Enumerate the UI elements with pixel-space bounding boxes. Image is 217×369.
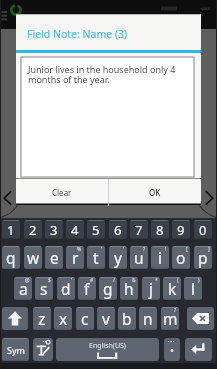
staticText: e [50,247,59,268]
button[interactable]: 5 [87,220,105,239]
staticText: 7 [135,221,143,239]
staticText: Sym [7,344,25,356]
staticText: 1 [7,221,15,239]
button[interactable]: w [24,246,42,269]
button[interactable]: Backspace [187,307,214,330]
button[interactable]: o [172,246,190,269]
staticText: b [122,308,132,329]
button[interactable]: t [87,246,105,269]
button[interactable]: 8 [151,220,169,239]
staticText: 0 [199,221,207,239]
staticText: English(US) [89,341,126,351]
staticText: [ [186,246,188,253]
button[interactable]: Period [164,338,180,361]
staticText: OK [149,187,161,198]
button[interactable]: c [76,307,94,330]
button[interactable]: d [57,277,75,300]
staticText: % [77,246,82,253]
button[interactable]: z [33,307,51,330]
staticText: t [93,247,99,268]
staticText: i [158,247,162,268]
staticText: 6 [114,221,122,239]
button[interactable]: l [184,277,202,300]
button[interactable]: g [99,277,117,300]
button[interactable]: Input settings [33,338,53,361]
staticText: l [191,278,195,299]
staticText: v [102,308,110,329]
button[interactable]: 9 [172,220,190,239]
button[interactable]: h [120,277,138,300]
staticText: m [163,308,178,329]
button[interactable]: p [194,246,212,269]
staticText: 3 [50,221,58,239]
staticText: Junior lives in the household only 4 mon… [28,63,180,86]
staticText: c [81,308,89,329]
button[interactable]: Shift [2,307,28,330]
staticText: s [40,278,48,299]
staticText: Field Note: Name (3) [27,27,128,41]
button[interactable]: f [78,277,96,300]
staticText: a [19,278,28,299]
staticText: ) [198,277,200,284]
button[interactable]: 2 [24,220,42,239]
staticText: * [155,277,158,284]
button[interactable]: x [54,307,72,330]
staticText: ] [208,246,210,253]
button[interactable]: 4 [66,220,84,239]
button[interactable]: a [14,277,32,300]
button[interactable]: 0 [194,220,212,239]
staticText: w [27,247,40,268]
staticText: ' [71,277,73,284]
staticText: ( [177,277,179,284]
staticText: j [149,278,153,299]
staticText: 5 [92,221,100,239]
staticText: p [198,247,208,268]
button[interactable]: Menu [0,9,10,22]
button[interactable]: Enter [185,338,212,361]
staticText: o [176,247,186,268]
button[interactable]: n [139,307,157,330]
staticText: ? [174,307,177,314]
button[interactable]: Sym [2,338,29,361]
staticText: g [103,278,113,299]
staticText: 2 [29,221,37,239]
staticText: h [124,278,134,299]
button[interactable]: OK [109,179,201,206]
button[interactable]: y [109,246,127,269]
button[interactable]: 1 [2,220,20,239]
button[interactable]: v [97,307,115,330]
button[interactable]: i [151,246,169,269]
button[interactable]: m [161,307,179,330]
staticText: & [132,277,136,284]
staticText: d [61,278,71,299]
staticText: ' [101,246,103,253]
staticText: 8 [156,221,164,239]
staticText: q [6,247,16,268]
button[interactable]: e [45,246,63,269]
button[interactable]: q [2,246,20,269]
button[interactable]: r [66,246,84,269]
staticText: # [90,277,94,284]
staticText: r [72,247,79,268]
staticText: $ [48,277,51,284]
staticText: x [59,308,68,329]
button[interactable]: u [130,246,148,269]
button[interactable]: 6 [109,220,127,239]
staticText: k [168,278,177,299]
button[interactable]: b [118,307,136,330]
staticText: u [134,247,144,268]
button[interactable]: j [142,277,160,300]
button[interactable]: k [163,277,181,300]
staticText: 4 [71,221,79,239]
button[interactable]: English(US) [56,338,159,361]
staticText: / [113,277,115,284]
staticText: z [38,308,46,329]
button[interactable]: 3 [45,220,63,239]
staticText: f [84,278,90,299]
staticText: @ [25,277,30,284]
button[interactable]: Clear [16,179,108,206]
button[interactable]: s [35,277,53,300]
staticText: y [114,247,122,268]
button[interactable]: 7 [130,220,148,239]
staticText: n [143,308,153,329]
